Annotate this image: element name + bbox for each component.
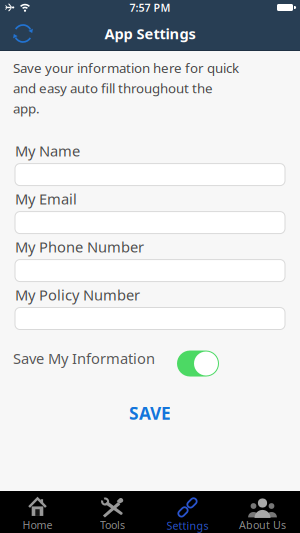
staticText: Save your information here for quick and… <box>13 59 239 117</box>
staticText: My Phone Number <box>15 237 144 257</box>
button[interactable]: Home <box>0 491 75 533</box>
staticText: Settings <box>166 518 208 533</box>
staticText: SAVE <box>129 401 171 424</box>
button[interactable]: SAVE <box>129 401 171 424</box>
button[interactable]: My Phone Number <box>15 260 285 282</box>
staticText: My Name <box>15 141 80 161</box>
staticText: App Settings <box>104 24 195 43</box>
button[interactable]: Save My Information <box>177 350 219 376</box>
staticText: Save My Information <box>13 348 155 368</box>
staticText: About Us <box>239 518 286 532</box>
button[interactable]: Settings <box>150 491 225 533</box>
staticText: Tools <box>100 518 125 532</box>
button[interactable]: My Name <box>15 164 285 186</box>
button[interactable]: My Policy Number <box>15 307 285 329</box>
staticText: 7:57 PM <box>129 0 170 15</box>
button[interactable]: Refresh <box>0 22 33 42</box>
button[interactable]: Tools <box>75 491 150 533</box>
staticText: My Policy Number <box>15 285 140 305</box>
button[interactable]: About Us <box>225 491 300 533</box>
button[interactable]: My Email <box>15 212 285 234</box>
staticText: My Email <box>15 189 77 209</box>
staticText: Home <box>22 518 52 532</box>
